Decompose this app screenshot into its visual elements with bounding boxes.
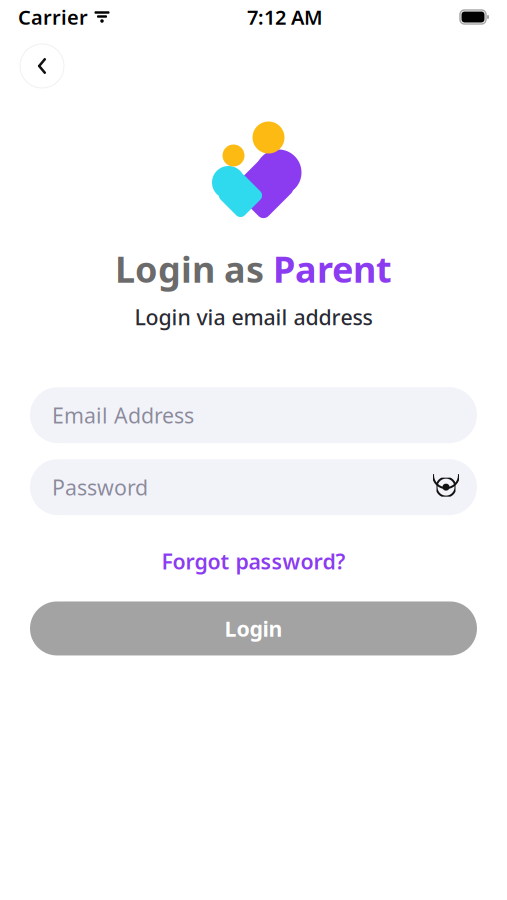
button[interactable]: Login — [30, 601, 477, 655]
button[interactable]: Back — [16, 40, 68, 92]
button[interactable]: Show password — [415, 459, 477, 515]
staticText: Login as — [115, 245, 273, 293]
button[interactable]: Email Address — [30, 387, 477, 443]
staticText: Parent — [273, 245, 392, 293]
staticText: Email Address — [52, 401, 194, 429]
staticText: Login — [224, 614, 282, 643]
button[interactable]: Password — [30, 459, 415, 515]
staticText: Login via email address — [134, 303, 372, 331]
staticText: Carrier — [18, 4, 88, 30]
staticText: 7:12 AM — [247, 4, 323, 30]
button[interactable]: Forgot password? — [149, 541, 357, 581]
staticText: Forgot password? — [161, 547, 345, 575]
staticText: Password — [52, 473, 148, 501]
